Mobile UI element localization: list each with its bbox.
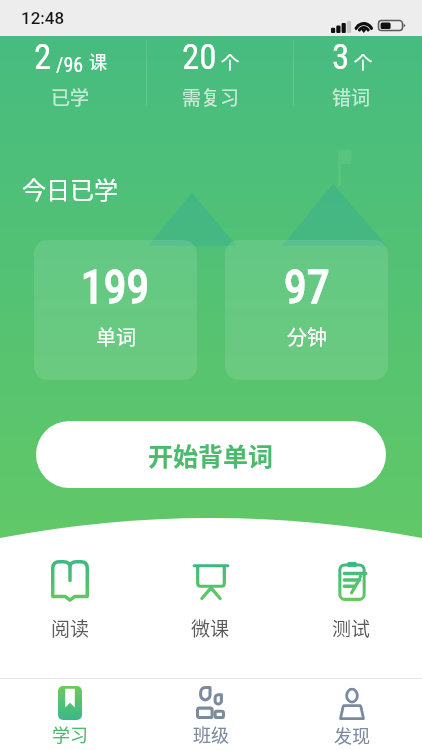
button[interactable]: 阅读	[0, 560, 140, 642]
button[interactable]: 微课	[140, 560, 281, 642]
staticText: 阅读	[51, 614, 90, 642]
button[interactable]: 3	[281, 36, 422, 116]
staticText: 课	[89, 48, 107, 74]
staticText: 班级	[193, 721, 229, 747]
button[interactable]: 班级	[140, 679, 281, 750]
button[interactable]: 20	[140, 36, 281, 116]
button[interactable]: 学习	[0, 679, 140, 750]
staticText: 已学	[51, 83, 90, 111]
staticText: 2	[34, 37, 52, 78]
staticText: 个	[221, 48, 239, 74]
staticText: 开始背单词	[148, 437, 274, 473]
staticText: 测试	[332, 614, 371, 642]
staticText: 今日已学	[22, 171, 118, 206]
staticText: 需复习	[182, 83, 240, 111]
staticText: 错词	[332, 83, 371, 111]
staticText: 发现	[334, 722, 370, 748]
staticText: 20	[182, 37, 217, 78]
staticText: 单词	[96, 322, 136, 351]
staticText: 3	[332, 37, 350, 78]
staticText: 12:48	[21, 8, 65, 28]
staticText: /96	[56, 53, 84, 76]
staticText: 97	[284, 260, 330, 314]
button[interactable]: 97	[225, 240, 388, 380]
button[interactable]: 开始背单词	[36, 421, 386, 488]
staticText: 分钟	[287, 322, 327, 351]
button[interactable]: 发现	[281, 679, 422, 750]
staticText: 学习	[52, 721, 88, 747]
button[interactable]: 199	[34, 240, 197, 380]
button[interactable]: 测试	[281, 560, 422, 642]
staticText: 微课	[191, 614, 230, 642]
button[interactable]: 2	[0, 36, 140, 116]
staticText: 个	[354, 48, 372, 74]
staticText: 199	[81, 260, 150, 314]
